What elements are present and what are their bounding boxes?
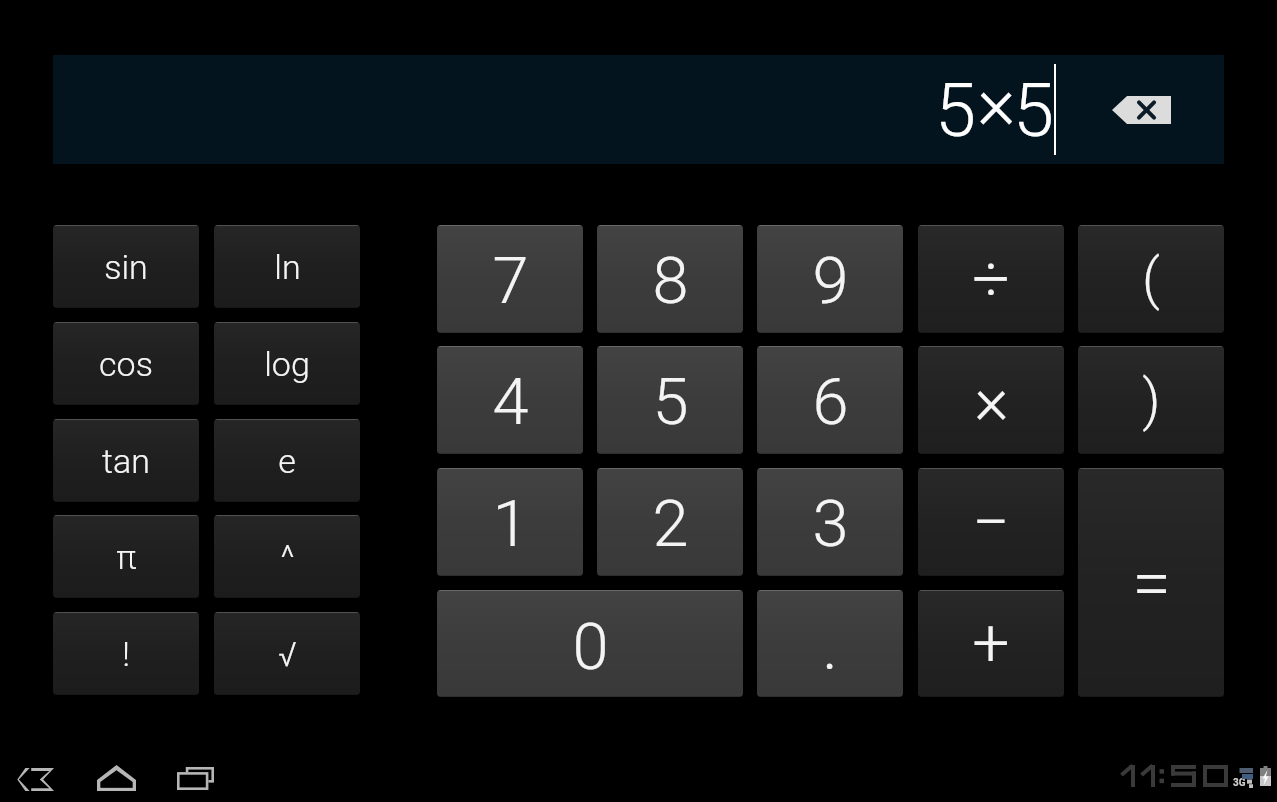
button[interactable]: 8 <box>597 225 743 333</box>
staticText: 2 <box>652 486 689 562</box>
staticText: 4 <box>492 364 529 440</box>
button[interactable]: Delete <box>1106 88 1176 132</box>
button[interactable]: sin <box>53 225 199 308</box>
staticText: ln <box>274 247 301 287</box>
button[interactable]: tan <box>53 419 199 502</box>
staticText: π <box>116 537 137 577</box>
button[interactable]: ÷ <box>918 225 1064 333</box>
button[interactable]: + <box>918 590 1064 697</box>
staticText: . <box>822 609 838 685</box>
button[interactable]: = <box>1078 468 1224 697</box>
button[interactable]: 2 <box>597 468 743 576</box>
button[interactable]: cos <box>53 322 199 405</box>
button[interactable]: ) <box>1078 346 1224 454</box>
staticText: 7 <box>492 243 529 319</box>
staticText: √ <box>278 634 297 674</box>
staticText: × <box>974 362 1009 439</box>
button[interactable]: 9 <box>757 225 903 333</box>
staticText: log <box>264 344 310 384</box>
staticText: + <box>972 605 1010 682</box>
staticText: − <box>972 484 1010 561</box>
button[interactable]: log <box>214 322 360 405</box>
staticText: × <box>977 59 1016 146</box>
button[interactable]: 4 <box>437 346 583 454</box>
staticText: 5 <box>652 364 689 440</box>
button[interactable]: 5 <box>597 346 743 454</box>
staticText: e <box>278 441 296 481</box>
button[interactable]: 1 <box>437 468 583 576</box>
staticText: 5 <box>1013 67 1055 154</box>
button[interactable]: 0 <box>437 590 743 697</box>
button[interactable]: π <box>53 515 199 598</box>
button[interactable]: ln <box>214 225 360 308</box>
button[interactable]: Home <box>89 759 143 797</box>
staticText: 9 <box>812 243 849 319</box>
button[interactable]: 3 <box>757 468 903 576</box>
button[interactable]: Back <box>8 760 62 798</box>
staticText: 8 <box>652 243 689 319</box>
staticText: ! <box>122 634 130 674</box>
staticText: = <box>1132 542 1171 624</box>
button[interactable]: × <box>918 346 1064 454</box>
button[interactable]: . <box>757 590 903 697</box>
button[interactable]: Recent apps <box>168 759 222 797</box>
staticText: ) <box>1142 367 1161 433</box>
button[interactable]: e <box>214 419 360 502</box>
button[interactable]: 5 <box>53 55 1224 164</box>
staticText: 5 <box>935 67 977 154</box>
staticText: ^ <box>280 537 295 577</box>
button[interactable]: ^ <box>214 515 360 598</box>
button[interactable]: 7 <box>437 225 583 333</box>
staticText: ÷ <box>972 241 1010 318</box>
button[interactable]: 6 <box>757 346 903 454</box>
staticText: 1 <box>492 486 529 562</box>
staticText: cos <box>99 344 153 384</box>
staticText: ( <box>1142 246 1160 312</box>
button[interactable]: ( <box>1078 225 1224 333</box>
staticText: 3 <box>812 486 849 562</box>
staticText: tan <box>102 441 150 481</box>
button[interactable]: − <box>918 468 1064 576</box>
staticText: sin <box>104 247 148 287</box>
button[interactable]: ! <box>53 612 199 695</box>
staticText: 3G <box>1233 777 1246 789</box>
button[interactable]: √ <box>214 612 360 695</box>
staticText: 0 <box>572 609 609 685</box>
staticText: 6 <box>812 364 849 440</box>
